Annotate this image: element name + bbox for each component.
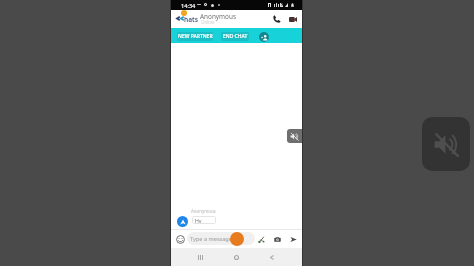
button[interactable]: Send [287,233,299,245]
button[interactable]: Video call [287,13,299,25]
staticText: Online [201,19,215,25]
button[interactable]: Call [270,12,284,26]
staticText: Hy [195,217,202,224]
staticText: NEW PARTNER [178,33,213,40]
button[interactable]: Emoji [173,233,187,245]
button[interactable]: Camera [271,233,283,245]
button[interactable]: Type a message [187,232,255,245]
button[interactable]: Back to Chats [175,10,201,28]
staticText: 14:34 [181,2,196,10]
button[interactable]: NEW PARTNER [177,32,213,41]
staticText: Anonymous [200,12,236,21]
button[interactable]: Back [264,249,280,265]
button[interactable]: Recents [192,249,208,265]
staticText: END CHAT [223,33,248,40]
button[interactable]: Attach [255,233,267,245]
button[interactable]: END CHAT [221,32,249,41]
staticText: Anonymous [191,208,216,214]
button[interactable]: Add friend [259,32,269,42]
button[interactable]: Home [228,249,244,265]
staticText: Type a message [190,235,232,243]
staticText: hats [184,15,198,24]
